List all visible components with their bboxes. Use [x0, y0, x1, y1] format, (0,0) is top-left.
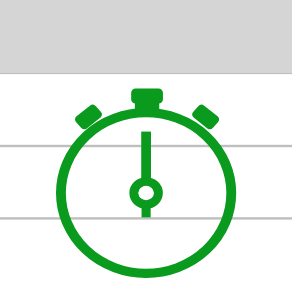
button[interactable]: Stopwatch — [0, 0, 292, 292]
